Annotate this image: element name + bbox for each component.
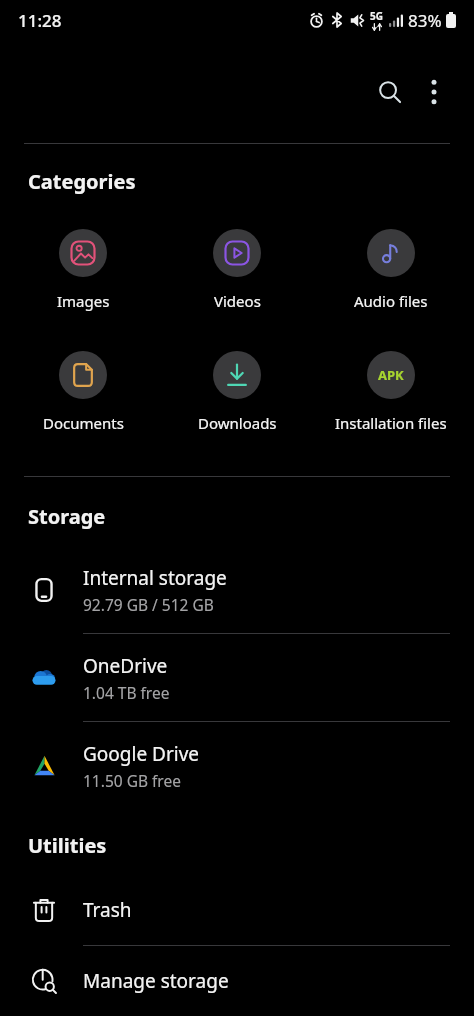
staticText: APK <box>378 366 404 384</box>
staticText: 11.50 GB free <box>83 770 181 791</box>
staticText: Trash <box>83 897 132 923</box>
button[interactable]: Google Drive <box>0 722 474 809</box>
button[interactable]: Images <box>6 229 160 311</box>
button[interactable]: Downloads <box>160 351 314 433</box>
staticText: 92.79 GB / 512 GB <box>83 594 214 615</box>
button[interactable] <box>412 70 456 114</box>
button[interactable]: Trash <box>0 875 474 945</box>
staticText: Google Drive <box>83 741 200 767</box>
button[interactable]: Manage storage <box>0 946 474 1016</box>
staticText: Images <box>57 291 110 311</box>
staticText: Categories <box>28 168 136 195</box>
staticText: Downloads <box>198 413 277 433</box>
button[interactable] <box>368 70 412 114</box>
button[interactable]: Audio files <box>314 229 468 311</box>
staticText: Storage <box>28 503 106 530</box>
button[interactable]: Videos <box>160 229 314 311</box>
staticText: 5G <box>370 9 383 23</box>
staticText: 1.04 TB free <box>83 682 170 703</box>
staticText: Manage storage <box>83 968 229 994</box>
button[interactable]: OneDrive <box>0 634 474 721</box>
staticText: Utilities <box>28 832 107 859</box>
staticText: Videos <box>214 291 261 311</box>
button[interactable]: APK <box>314 351 468 433</box>
staticText: Audio files <box>354 291 428 311</box>
staticText: 83% <box>408 9 442 32</box>
button[interactable]: Internal storage <box>0 546 474 633</box>
staticText: OneDrive <box>83 653 168 679</box>
staticText: 11:28 <box>18 9 62 32</box>
staticText: Documents <box>43 413 124 433</box>
staticText: Installation files <box>335 413 447 433</box>
button[interactable]: Documents <box>6 351 160 433</box>
staticText: Internal storage <box>83 565 227 591</box>
